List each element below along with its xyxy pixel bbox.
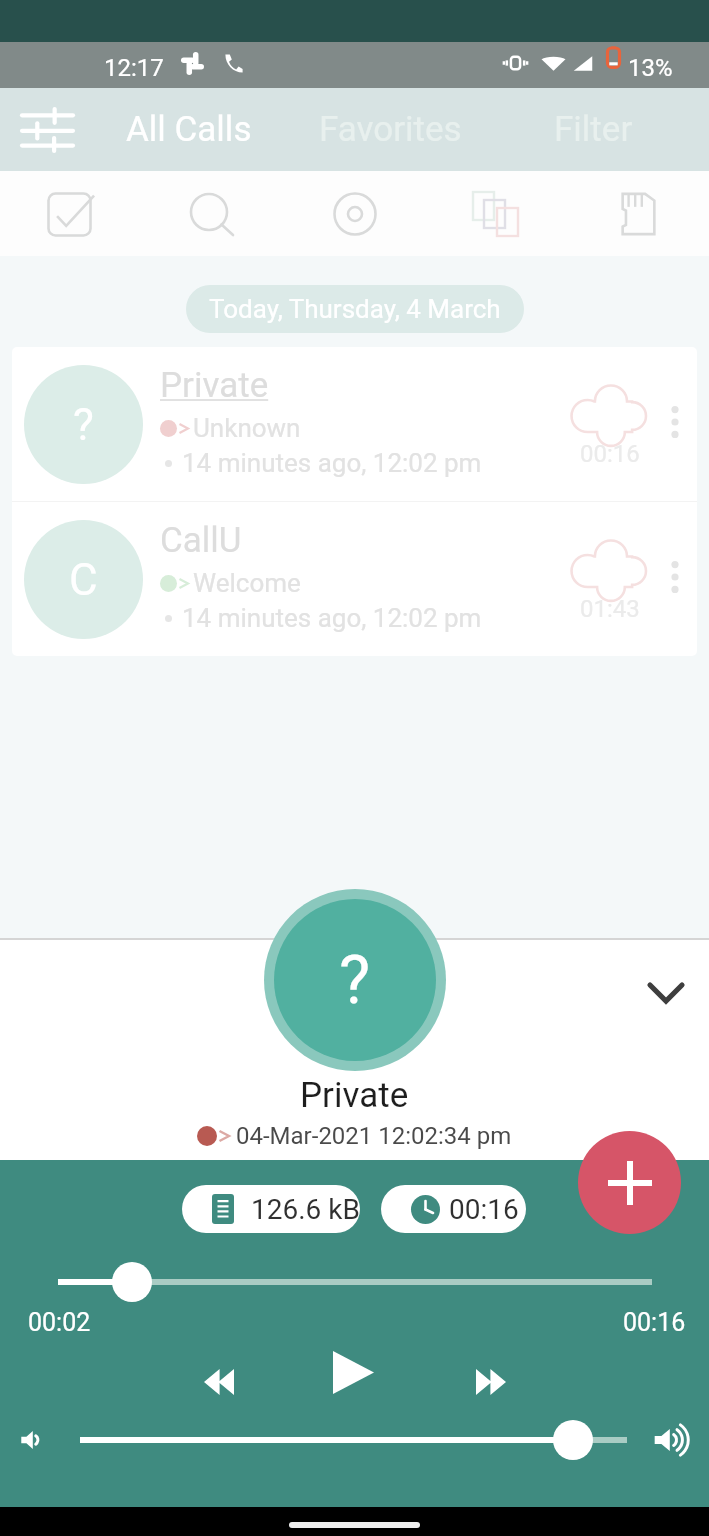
staticText: 00:16 <box>623 1308 686 1337</box>
staticText: 00:16 <box>449 1193 519 1226</box>
button[interactable]: 00:16 <box>381 1185 526 1233</box>
button[interactable]: More options <box>652 385 697 459</box>
staticText: Favorites <box>319 109 462 150</box>
button[interactable]: Rewind <box>174 1337 264 1427</box>
staticText: Today, Thursday, 4 March <box>209 294 501 324</box>
button[interactable]: 126.6 kB <box>182 1185 360 1233</box>
staticText: 01:43 <box>580 595 640 623</box>
button[interactable]: All Calls <box>100 88 277 171</box>
staticText: C <box>69 554 98 606</box>
button[interactable]: Mute <box>10 1414 62 1466</box>
button[interactable]: Today, Thursday, 4 March <box>186 285 524 333</box>
staticText: 13% <box>628 54 673 82</box>
button[interactable]: Filter settings <box>6 88 88 171</box>
staticText: 14 minutes ago, 12:02 pm <box>182 603 482 633</box>
staticText: CallU <box>160 520 242 561</box>
staticText: Private <box>300 1075 409 1116</box>
staticText: Unknown <box>193 413 301 443</box>
staticText: ? <box>73 399 94 451</box>
staticText: 126.6 kB <box>251 1193 360 1226</box>
staticText: Private <box>160 365 269 406</box>
staticText: 12:17 <box>104 54 164 82</box>
button[interactable]: SD card <box>591 185 685 243</box>
button[interactable]: ? <box>12 347 697 501</box>
staticText: ? <box>339 942 371 1019</box>
button[interactable]: Recordings <box>308 185 402 243</box>
button[interactable]: Add <box>578 1131 681 1234</box>
button[interactable]: Search <box>166 185 260 243</box>
button[interactable]: Volume up <box>648 1414 700 1466</box>
button[interactable]: Play <box>308 1327 398 1417</box>
staticText: 00:16 <box>580 440 640 468</box>
button[interactable]: Select all <box>24 185 118 243</box>
staticText: 00:02 <box>28 1308 91 1337</box>
button[interactable]: C <box>12 502 697 656</box>
button[interactable]: Fast forward <box>446 1337 536 1427</box>
button[interactable]: Filter <box>518 88 668 171</box>
staticText: Welcome <box>193 568 301 598</box>
button[interactable]: More options <box>652 540 697 614</box>
staticText: 14 minutes ago, 12:02 pm <box>182 448 482 478</box>
button[interactable]: Cloud copies <box>450 185 544 243</box>
staticText: All Calls <box>126 109 252 150</box>
button[interactable]: Favorites <box>300 88 480 171</box>
button[interactable]: Collapse <box>637 964 694 1021</box>
staticText: Filter <box>554 109 633 150</box>
staticText: 04-Mar-2021 12:02:34 pm <box>236 1122 512 1150</box>
